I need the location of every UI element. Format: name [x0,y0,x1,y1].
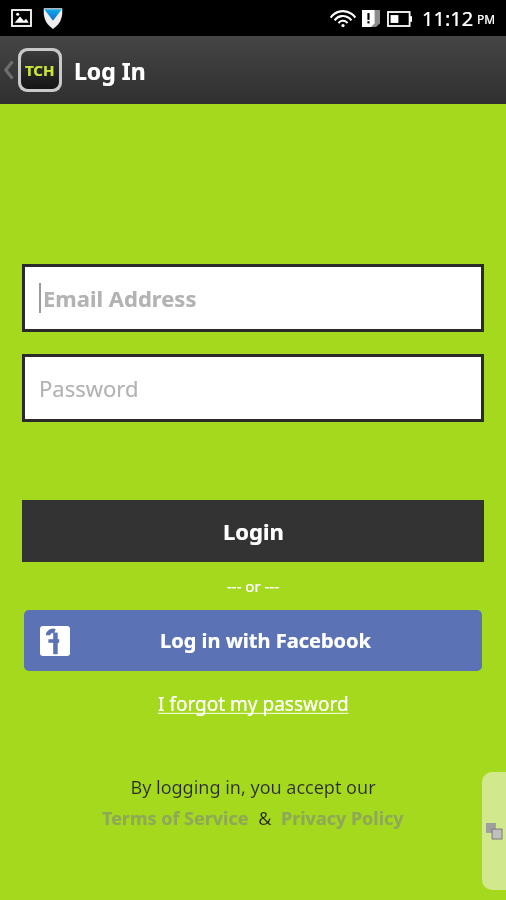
button[interactable]: Login [22,500,484,562]
button[interactable]: I forgot my password [150,689,357,719]
staticText: 11:12 [422,5,474,32]
button[interactable]: Back [0,45,18,95]
button[interactable]: Privacy Policy [281,806,404,831]
button[interactable]: Terms of Service [102,806,249,831]
staticText: Login [223,516,284,546]
staticText: Privacy Policy [281,806,404,831]
staticText: PM [477,11,496,27]
staticText: Terms of Service [102,806,249,831]
staticText: & [249,806,281,831]
staticText: I forgot my password [158,691,349,717]
staticText: Password [39,373,139,403]
staticText: By logging in, you accept our [0,775,506,800]
staticText: TCH [25,60,55,80]
staticText: Email Address [43,283,197,313]
staticText: Log In [74,55,146,86]
staticText: --- or --- [0,576,506,596]
button[interactable]: Password [25,357,481,419]
button[interactable]: Log in with Facebook [24,610,482,671]
button[interactable]: Floating tool [482,772,506,890]
staticText: Log in with Facebook [160,627,371,654]
button[interactable]: Email Address [25,267,481,329]
